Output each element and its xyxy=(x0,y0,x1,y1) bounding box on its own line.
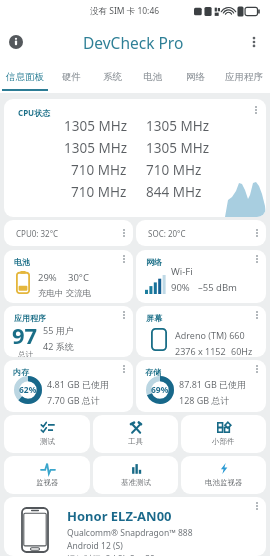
button[interactable]: 基准测试 xyxy=(93,456,178,494)
staticText: 55 用户 xyxy=(43,324,74,336)
staticText: Wi-Fi xyxy=(171,265,193,278)
staticText: 60Hz xyxy=(231,345,253,357)
button[interactable]: CPU状态 xyxy=(4,99,266,217)
staticText: 小部件 xyxy=(212,437,235,446)
staticText: –55 dBm xyxy=(198,281,237,294)
staticText: 屏幕 xyxy=(146,313,162,323)
staticText: 充电中 交流电 xyxy=(38,287,92,299)
staticText: CPU状态 xyxy=(18,107,51,118)
staticText: 运行时间: 8d 8h 2m 39s xyxy=(67,553,159,556)
button[interactable]: 硬件 xyxy=(49,62,93,91)
button[interactable]: 应用程序 xyxy=(4,306,133,357)
staticText: SOC: 20°C xyxy=(148,228,186,239)
staticText: Qualcomm® Snapdragon™ 888 xyxy=(67,527,193,539)
button[interactable]: SOC: 20°C xyxy=(136,220,266,246)
button[interactable]: More xyxy=(117,362,131,376)
button[interactable]: 网络 xyxy=(173,62,217,91)
staticText: 存储 xyxy=(145,367,161,377)
staticText: 29% xyxy=(38,271,57,284)
button[interactable]: 存储 xyxy=(136,360,266,412)
button[interactable]: 测试 xyxy=(4,415,90,453)
staticText: 总计 xyxy=(18,350,33,357)
staticText: 97 xyxy=(12,320,38,350)
staticText: 62% xyxy=(19,384,37,396)
staticText: 1305 MHz xyxy=(146,117,209,135)
staticText: 网络 xyxy=(146,257,162,267)
staticText: DevCheck Pro xyxy=(83,32,184,53)
staticText: 应用程序 xyxy=(225,71,263,83)
staticText: 30°C xyxy=(68,271,89,284)
button[interactable]: More xyxy=(250,226,264,240)
staticText: 710 MHz xyxy=(71,183,127,201)
staticText: 信息面板 xyxy=(6,71,44,83)
button[interactable]: 电池 xyxy=(132,62,173,91)
button[interactable]: More xyxy=(117,252,131,266)
staticText: 69% xyxy=(151,384,169,396)
staticText: 1305 MHz xyxy=(64,139,127,157)
staticText: 硬件 xyxy=(62,71,81,83)
staticText: 128 GB 总计 xyxy=(179,394,230,406)
button[interactable]: More xyxy=(250,308,264,322)
staticText: 1305 MHz xyxy=(146,139,209,157)
staticText: 没有 SIM 卡 10:46 xyxy=(90,5,160,17)
staticText: 电池 xyxy=(143,71,162,83)
button[interactable]: 内存 xyxy=(4,360,133,412)
staticText: Android 12 (S) xyxy=(67,540,123,552)
button[interactable]: More xyxy=(250,362,264,376)
staticText: 1305 MHz xyxy=(64,117,127,135)
button[interactable]: 小部件 xyxy=(181,415,266,453)
button[interactable]: Honor ELZ-AN00 xyxy=(4,497,266,556)
staticText: 42 系统 xyxy=(43,340,74,352)
button[interactable]: 网络 xyxy=(136,250,266,303)
staticText: CPU0: 32°C xyxy=(16,228,59,239)
staticText: 内存 xyxy=(13,367,29,377)
button[interactable]: 系统 xyxy=(93,62,132,91)
staticText: 网络 xyxy=(186,71,205,83)
staticText: Honor ELZ-AN00 xyxy=(67,507,172,525)
button[interactable]: 电池监视器 xyxy=(181,456,266,494)
button[interactable]: Info xyxy=(3,29,29,55)
button[interactable]: More xyxy=(117,308,131,322)
button[interactable]: 工具 xyxy=(93,415,178,453)
staticText: 2376 x 1152 xyxy=(175,345,226,357)
staticText: 工具 xyxy=(128,437,143,446)
staticText: Adreno (TM) 660 xyxy=(175,329,245,341)
button[interactable]: 应用程序 xyxy=(217,62,270,91)
staticText: 测试 xyxy=(40,437,55,446)
staticText: 710 MHz xyxy=(146,161,202,179)
staticText: 4.81 GB 已使用 xyxy=(47,378,109,390)
button[interactable]: 信息面板 xyxy=(0,62,49,91)
staticText: 应用程序 xyxy=(14,313,46,323)
button[interactable]: 屏幕 xyxy=(136,306,266,357)
button[interactable]: More xyxy=(249,103,263,117)
staticText: 电池 xyxy=(14,257,30,267)
staticText: 710 MHz xyxy=(71,161,127,179)
button[interactable]: CPU0: 32°C xyxy=(4,220,133,246)
button[interactable]: More xyxy=(250,499,264,513)
staticText: 7.70 GB 总计 xyxy=(47,394,100,406)
staticText: 87.81 GB 已使用 xyxy=(179,378,247,390)
staticText: 90% xyxy=(171,281,190,294)
staticText: 基准测试 xyxy=(121,478,151,487)
staticText: 电池监视器 xyxy=(205,478,243,487)
staticText: 系统 xyxy=(103,71,122,83)
button[interactable]: 电池 xyxy=(4,250,133,303)
button[interactable]: 监视器 xyxy=(4,456,90,494)
button[interactable]: More xyxy=(117,226,131,240)
staticText: 844 MHz xyxy=(146,183,202,201)
staticText: 监视器 xyxy=(36,478,59,487)
button[interactable]: More xyxy=(250,252,264,266)
button[interactable]: More options xyxy=(241,29,267,55)
